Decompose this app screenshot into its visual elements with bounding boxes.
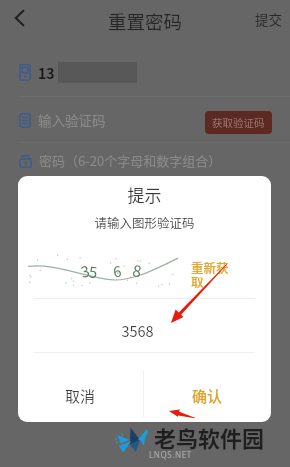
staticText: 请输入图形验证码 [18, 213, 271, 231]
button[interactable]: Back [7, 6, 31, 30]
staticText: 提交 [255, 9, 282, 29]
staticText: 3568 [18, 320, 264, 341]
button[interactable]: 重新获取 [191, 258, 231, 290]
staticText: 13 [38, 63, 55, 83]
staticText: LNQS.NET [149, 449, 192, 460]
staticText: 6 [112, 259, 123, 281]
staticText: 确认 [192, 385, 223, 407]
staticText: 取消 [65, 385, 96, 407]
staticText: 3 [78, 259, 93, 283]
button[interactable]: 取消 [18, 370, 143, 422]
staticText: 输入验证码 [38, 110, 106, 130]
button[interactable]: 提交 [247, 0, 290, 37]
staticText: 重新获取 [191, 258, 231, 290]
staticText: 获取验证码 [212, 115, 265, 130]
staticText: 重置密码 [108, 8, 183, 35]
button[interactable]: 确认 [144, 370, 271, 422]
staticText: 5 [88, 261, 99, 283]
staticText: 老鸟软件园 [154, 421, 265, 453]
staticText: 密码（6-20个字母和数字组合） [39, 151, 222, 170]
button[interactable]: 获取验证码 [205, 111, 272, 134]
staticText: 提示 [18, 182, 271, 207]
staticText: 8 [131, 258, 144, 282]
